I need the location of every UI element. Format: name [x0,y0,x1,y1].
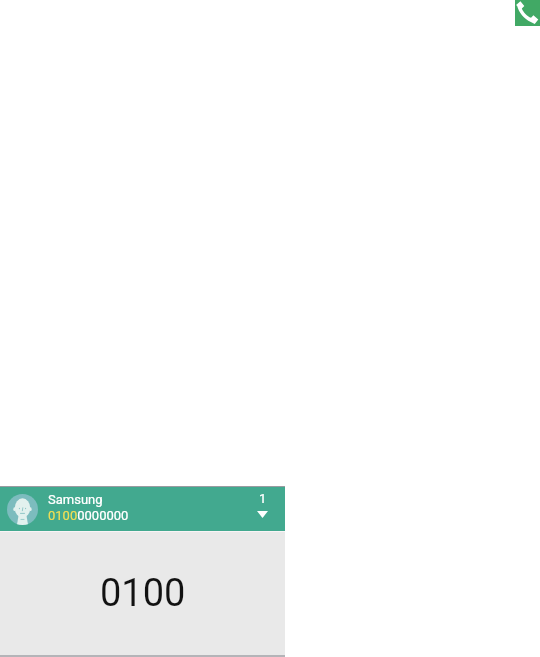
staticText: Samsung [48,492,103,507]
staticText: 1 [259,491,267,506]
button[interactable]: Call [515,0,540,26]
staticText: 0100 [100,571,186,616]
staticText: 01000000000 [48,508,129,523]
button[interactable]: Samsung [0,487,285,531]
